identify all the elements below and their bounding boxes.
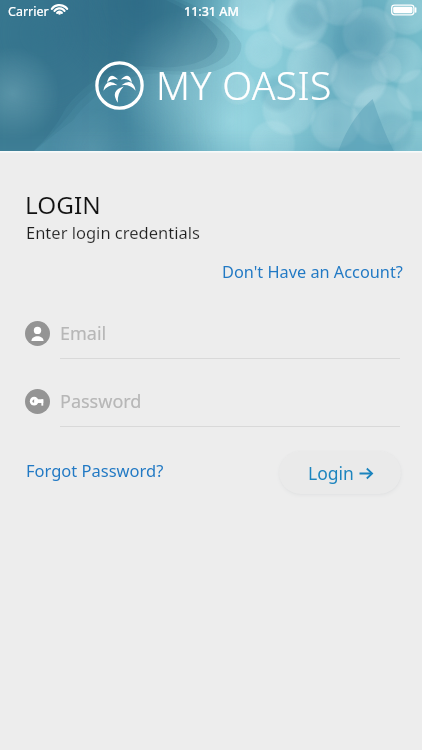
staticText: Enter login credentials: [26, 221, 200, 243]
button[interactable]: Password: [0, 384, 422, 432]
staticText: Password: [60, 389, 142, 414]
staticText: Forgot Password?: [26, 459, 164, 481]
staticText: Don't Have an Account?: [222, 261, 403, 283]
staticText: 11:31 AM: [184, 3, 239, 20]
button[interactable]: Don't Have an Account?: [219, 256, 406, 288]
staticText: Carrier: [8, 3, 49, 20]
staticText: MY OASIS: [156, 58, 332, 111]
staticText: Email: [60, 321, 107, 346]
button[interactable]: Forgot Password?: [14, 451, 176, 489]
staticText: Login: [308, 461, 354, 485]
staticText: LOGIN: [25, 188, 101, 221]
button[interactable]: Login: [279, 451, 401, 494]
button[interactable]: Email: [0, 316, 422, 364]
